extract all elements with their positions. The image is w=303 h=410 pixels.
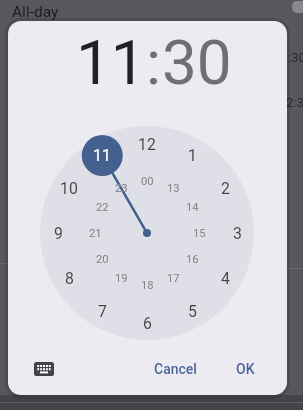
staticText: 2 <box>221 179 230 198</box>
staticText: 21 <box>89 227 102 240</box>
staticText: :30 <box>288 50 303 65</box>
staticText: 2:30 <box>286 95 303 110</box>
staticText: 23 <box>115 182 128 195</box>
staticText: 1 <box>188 146 197 165</box>
button[interactable]: Cancel <box>147 353 204 385</box>
staticText: 30 <box>162 26 232 99</box>
staticText: 13 <box>167 182 180 195</box>
staticText: 8 <box>65 269 74 288</box>
staticText: 5 <box>188 302 197 321</box>
button[interactable] <box>26 354 62 384</box>
staticText: 4 <box>221 269 230 288</box>
staticText: : <box>146 26 162 99</box>
staticText: 10 <box>60 179 78 198</box>
staticText: 16 <box>186 253 199 266</box>
staticText: 3 <box>233 224 242 243</box>
button[interactable]: OK <box>224 353 266 385</box>
staticText: 12 <box>138 135 156 154</box>
staticText: 6 <box>143 314 152 333</box>
staticText: 9 <box>54 224 63 243</box>
staticText: 20 <box>96 253 109 266</box>
staticText: 00 <box>141 175 154 188</box>
staticText: 19 <box>115 272 128 285</box>
staticText: 14 <box>186 201 199 214</box>
staticText: 15 <box>193 227 206 240</box>
staticText: All-day <box>12 3 59 21</box>
staticText: 11 <box>93 146 111 165</box>
staticText: 17 <box>167 272 180 285</box>
staticText: 18 <box>141 279 154 292</box>
staticText: 7 <box>98 302 107 321</box>
staticText: Cancel <box>154 361 197 377</box>
staticText: OK <box>236 361 255 377</box>
staticText: 11 <box>76 26 146 99</box>
staticText: 22 <box>96 201 109 214</box>
